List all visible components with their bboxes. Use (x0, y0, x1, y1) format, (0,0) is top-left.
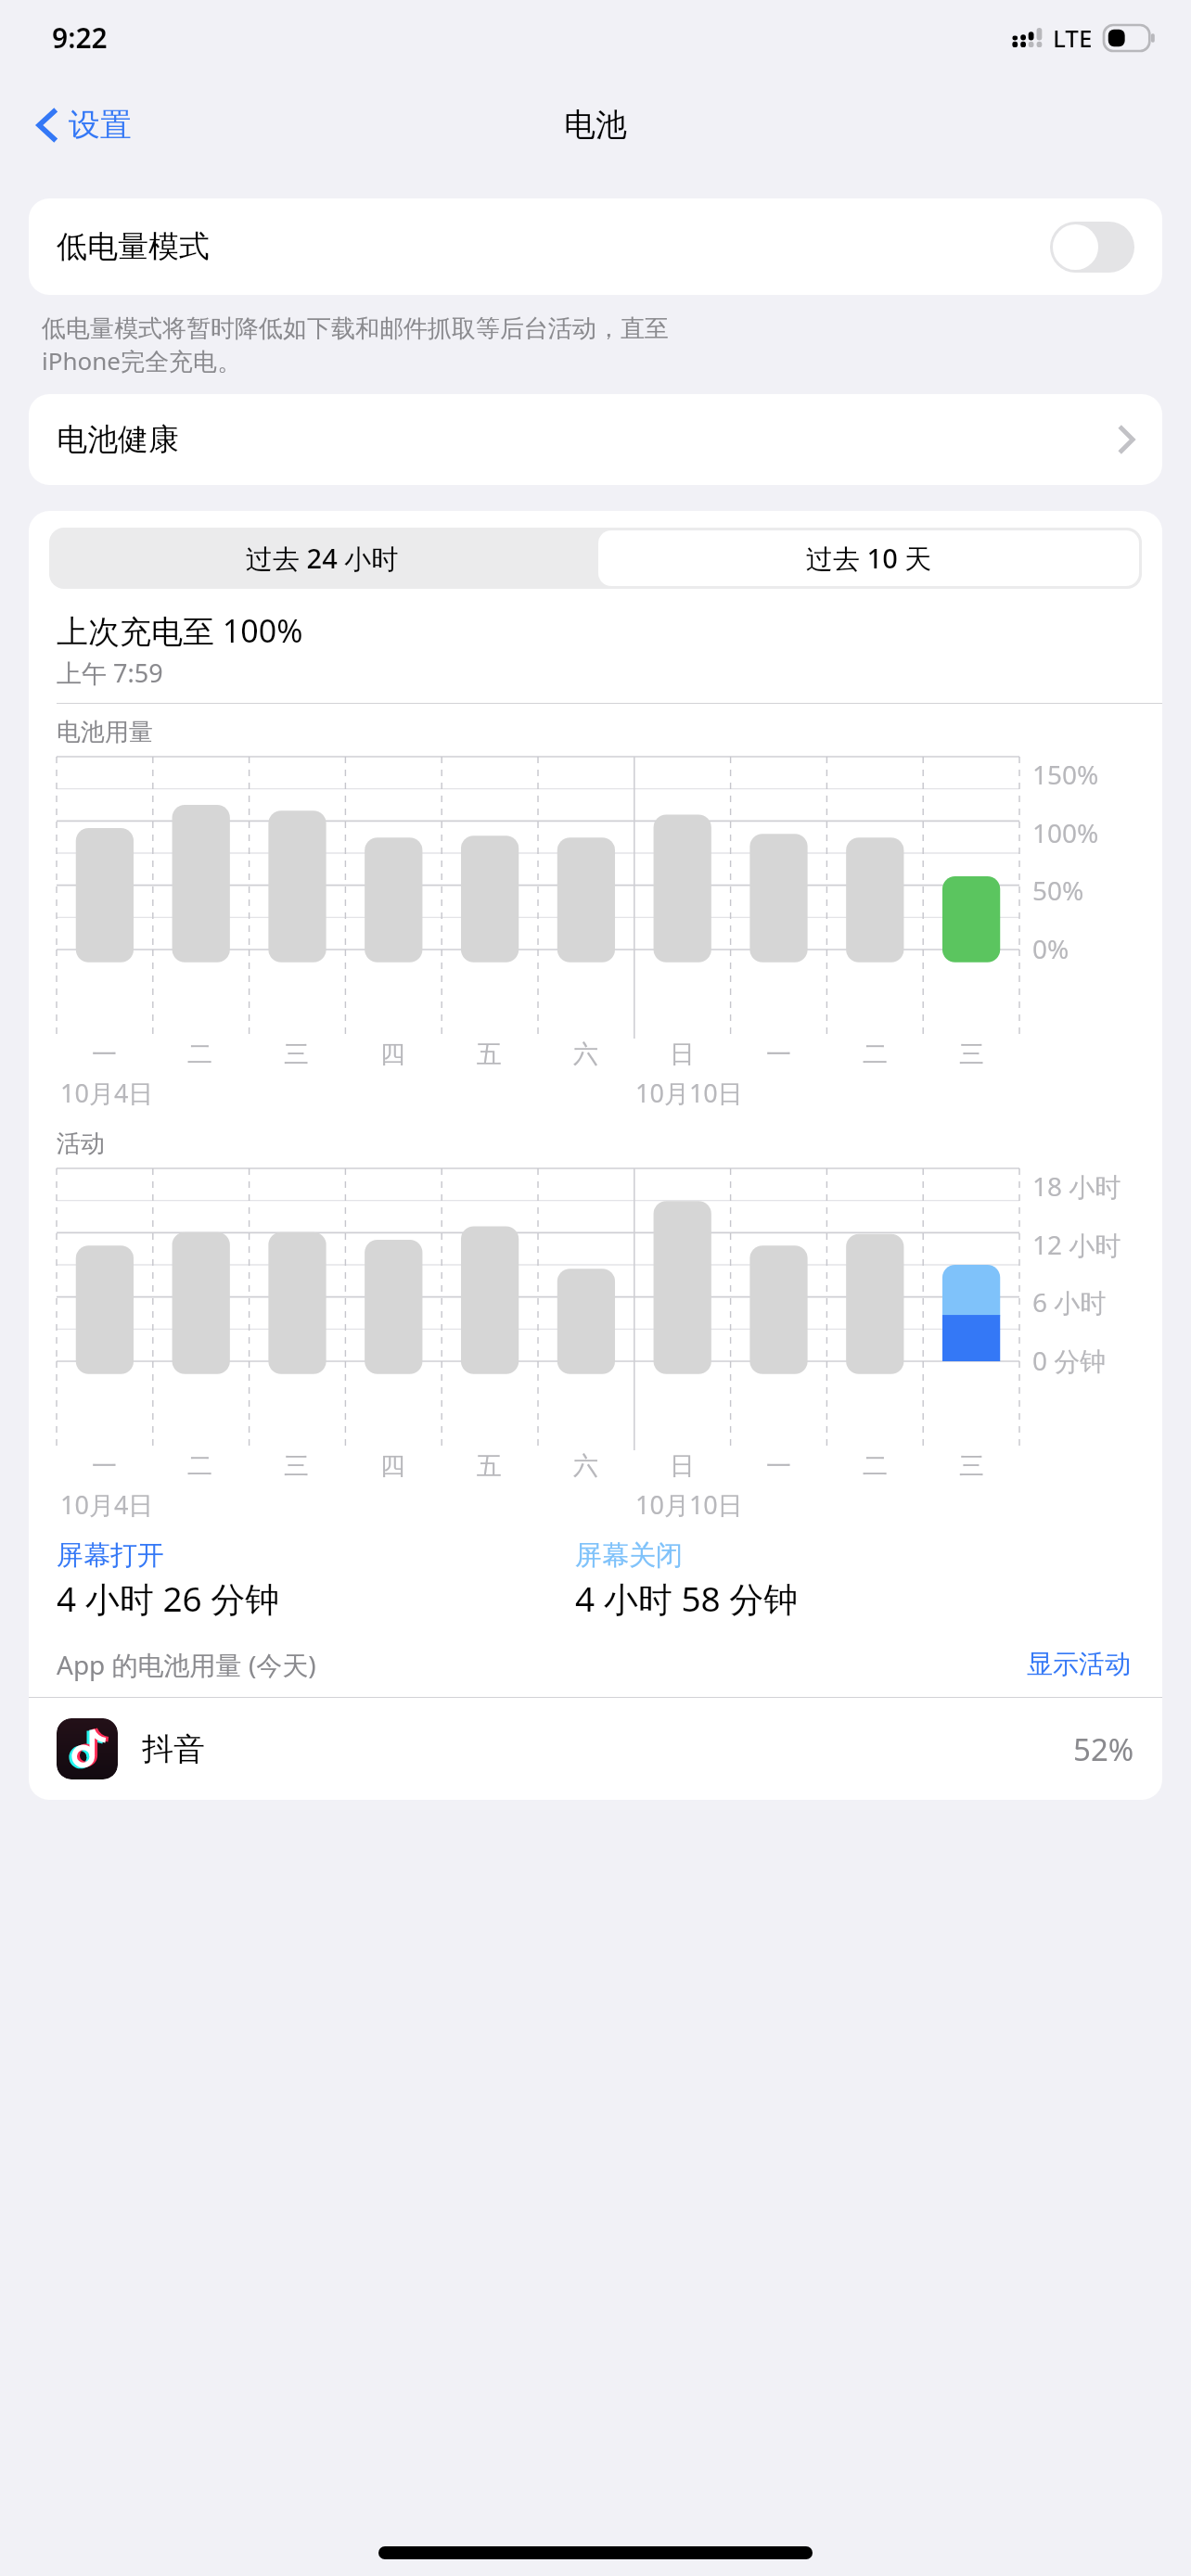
staticText: 三 (284, 1039, 309, 1070)
staticText: 10月4日 (60, 1076, 154, 1110)
staticText: 50% (1032, 873, 1084, 908)
button[interactable]: 低电量模式 (29, 198, 1162, 295)
staticText: 二 (863, 1039, 888, 1070)
staticText: 9:22 (52, 19, 108, 57)
staticText: 五 (477, 1450, 502, 1482)
staticText: 10月4日 (60, 1487, 154, 1522)
staticText: 五 (477, 1039, 502, 1070)
staticText: LTE (1053, 21, 1093, 54)
staticText: 低电量模式将暂时降低如下载和邮件抓取等后台活动，直至 iPhone完全充电。 (42, 313, 669, 377)
staticText: 过去 24 小时 (246, 540, 399, 577)
staticText: 100% (1032, 815, 1099, 850)
staticText: 上午 7:59 (57, 656, 163, 690)
staticText: 低电量模式 (57, 227, 1050, 266)
button[interactable]: 设置 (24, 97, 145, 152)
button[interactable]: 显示活动 (1023, 1646, 1134, 1682)
button[interactable]: 抖音 (29, 1698, 1162, 1800)
staticText: 4 小时 26 分钟 (57, 1575, 280, 1622)
staticText: 六 (573, 1039, 598, 1070)
staticText: 三 (284, 1450, 309, 1482)
staticText: 二 (863, 1450, 888, 1482)
staticText: 52% (1073, 1728, 1134, 1770)
staticText: 屏幕打开 (57, 1538, 164, 1573)
button[interactable]: 过去 10 天 (598, 530, 1139, 586)
staticText: 0% (1032, 931, 1069, 966)
button[interactable]: 过去 24 小时 (49, 528, 595, 589)
staticText: 一 (766, 1039, 791, 1070)
staticText: 设置 (69, 105, 132, 145)
staticText: 4 小时 58 分钟 (575, 1575, 799, 1622)
staticText: 活动 (57, 1129, 105, 1159)
staticText: 过去 10 天 (806, 540, 932, 577)
staticText: 六 (573, 1450, 598, 1482)
staticText: 18 小时 (1032, 1168, 1121, 1204)
staticText: 三 (959, 1039, 984, 1070)
staticText: 四 (380, 1450, 405, 1482)
staticText: 12 小时 (1032, 1227, 1121, 1262)
button[interactable]: 电池健康 (29, 394, 1162, 485)
staticText: App 的电池用量 (今天) (57, 1647, 1023, 1682)
staticText: 10月10日 (635, 1076, 743, 1110)
staticText: 屏幕关闭 (575, 1538, 683, 1573)
staticText: 日 (670, 1450, 695, 1482)
staticText: 电池 (564, 105, 627, 145)
staticText: 一 (766, 1450, 791, 1482)
staticText: 6 小时 (1032, 1284, 1107, 1320)
staticText: 电池健康 (57, 420, 1118, 459)
staticText: 抖音 (142, 1729, 1073, 1769)
staticText: 三 (959, 1450, 984, 1482)
staticText: 显示活动 (1027, 1648, 1131, 1680)
staticText: 150% (1032, 757, 1099, 792)
staticText: 一 (92, 1450, 117, 1482)
staticText: 上次充电至 100% (57, 609, 303, 652)
staticText: 0 分钟 (1032, 1343, 1107, 1378)
staticText: 四 (380, 1039, 405, 1070)
staticText: 电池用量 (57, 717, 153, 747)
staticText: 一 (92, 1039, 117, 1070)
staticText: 二 (187, 1039, 212, 1070)
staticText: 10月10日 (635, 1487, 743, 1522)
button[interactable]: 低电量模式开关 (1050, 222, 1134, 273)
staticText: 二 (187, 1450, 212, 1482)
staticText: 日 (670, 1039, 695, 1070)
